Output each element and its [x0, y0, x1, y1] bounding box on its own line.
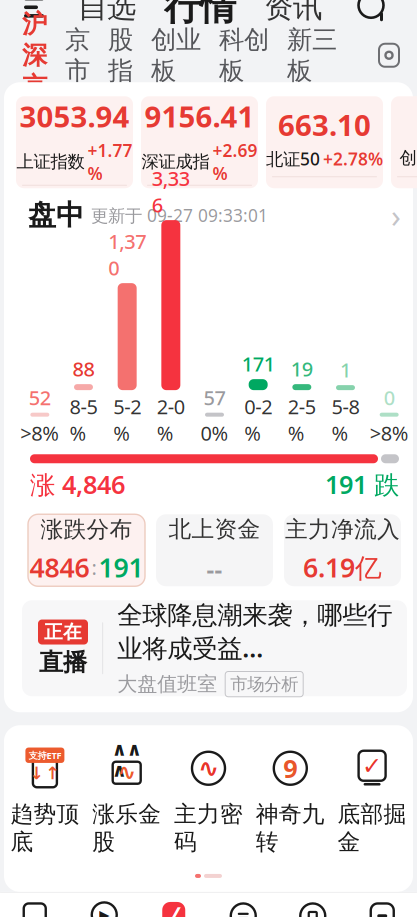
button[interactable]: 主力净流入	[284, 514, 401, 586]
button[interactable]: ▶	[69, 900, 139, 917]
staticText: 上证指数	[16, 151, 84, 172]
staticText: 88	[72, 356, 94, 382]
staticText: 0	[384, 384, 395, 411]
staticText: 191	[98, 549, 143, 585]
button[interactable]: 正在	[22, 600, 407, 696]
button[interactable]: ⁄	[139, 900, 208, 917]
button[interactable]: 首页	[0, 900, 69, 917]
staticText: 52	[29, 384, 51, 411]
staticText: 0-2%	[244, 393, 272, 446]
button[interactable]: ✓	[331, 747, 413, 856]
button[interactable]: 交易	[208, 900, 278, 917]
staticText: +2.78%	[323, 147, 383, 170]
staticText: 资讯	[264, 0, 322, 25]
staticText: +2.69%	[212, 139, 257, 185]
button[interactable]: 沪深京	[13, 35, 56, 75]
staticText: 市场分析	[230, 673, 298, 695]
staticText: 行情	[164, 0, 236, 29]
staticText: 主力密码	[174, 800, 243, 856]
staticText: 京市	[65, 24, 90, 86]
staticText: 股指	[108, 24, 133, 86]
staticText: 深证成指	[141, 151, 209, 172]
staticText: ›	[391, 194, 401, 236]
button[interactable]: 自选	[74, 0, 140, 25]
button[interactable]: ∧∧∧	[86, 747, 168, 856]
button[interactable]: 理财	[278, 900, 347, 917]
staticText: 更新于 09-27 09:33:01	[91, 204, 268, 227]
staticText: 2-0%	[157, 393, 185, 446]
staticText: 神奇九转	[256, 800, 325, 856]
staticText: ∿	[198, 754, 219, 783]
staticText: 科创板	[219, 24, 269, 86]
staticText: 191 跌	[325, 467, 399, 501]
staticText: 9156.41	[144, 97, 254, 136]
staticText: 全球降息潮来袭，哪些行业将成受益...	[117, 600, 392, 664]
button[interactable]: 股指	[99, 35, 142, 75]
staticText: 0%	[200, 420, 228, 446]
button[interactable]: 设置板块	[369, 35, 409, 75]
staticText: +1.77%	[87, 139, 132, 185]
staticText: 9	[283, 751, 297, 785]
staticText: 北证50	[266, 147, 320, 170]
staticText: 1	[340, 357, 351, 383]
staticText: 支持ETF	[28, 749, 61, 761]
button[interactable]: ↓	[4, 747, 86, 856]
staticText: 涨跌分布	[40, 516, 132, 543]
button[interactable]	[391, 96, 417, 188]
button[interactable]: 涨跌分布	[28, 514, 145, 586]
staticText: 涨 4,846	[30, 467, 125, 501]
staticText: 自选	[78, 0, 136, 25]
staticText: ∧∧∧	[112, 739, 142, 781]
staticText: 创	[399, 147, 416, 168]
staticText: --	[206, 553, 222, 585]
staticText: 沪深京	[22, 9, 47, 102]
button[interactable]: 科创板	[210, 35, 278, 75]
button[interactable]: 9156.41	[141, 96, 258, 188]
staticText: 底部掘金	[338, 800, 407, 856]
staticText: 直播	[39, 647, 87, 677]
staticText: ∿	[117, 759, 136, 785]
button[interactable]: 菜单	[12, 0, 56, 29]
button[interactable]: 京市	[56, 35, 99, 75]
button[interactable]: 账户	[347, 900, 417, 917]
staticText: 5-8%	[331, 393, 359, 446]
staticText: 2-5%	[288, 393, 316, 446]
staticText: 57	[203, 384, 225, 411]
button[interactable]: ∿	[168, 747, 249, 856]
button[interactable]: 行情	[160, 0, 240, 29]
button[interactable]: 搜索	[351, 0, 395, 29]
staticText: 北上资金	[168, 515, 260, 543]
staticText: 大盘值班室	[117, 672, 217, 696]
staticText: 4846	[29, 549, 89, 585]
staticText: :	[91, 554, 96, 580]
staticText: 6.19亿	[303, 549, 382, 585]
staticText: 171	[242, 351, 275, 377]
staticText: 5-2%	[113, 393, 141, 446]
staticText: 主力净流入	[285, 516, 400, 543]
staticText: 正在	[44, 621, 82, 643]
button[interactable]: 663.10	[266, 96, 383, 188]
staticText: 663.10	[278, 105, 371, 144]
staticText: ↑	[45, 763, 60, 783]
staticText: 3,336	[152, 165, 190, 218]
staticText: 1,370	[108, 228, 146, 281]
staticText: 盘中	[28, 198, 84, 232]
staticText: ▶	[99, 907, 109, 917]
button[interactable]: 9	[249, 747, 331, 856]
button[interactable]: 新三板	[278, 35, 346, 75]
staticText: ↓	[29, 763, 44, 783]
staticText: ✓	[362, 752, 382, 779]
button[interactable]: 北上资金	[156, 514, 273, 586]
staticText: >8%	[370, 420, 409, 446]
staticText: 19	[291, 356, 313, 382]
staticText: 3053.94	[19, 97, 129, 136]
button[interactable]: 3053.94	[16, 96, 133, 188]
button[interactable]: 盘中	[10, 198, 417, 232]
button[interactable]: 创业板	[142, 35, 210, 75]
staticText: 8-5%	[69, 393, 97, 446]
button[interactable]: 资讯	[260, 0, 326, 25]
staticText: >8%	[20, 420, 59, 446]
staticText: 创业板	[151, 24, 201, 86]
staticText: 新三板	[287, 24, 337, 86]
staticText: ⁄	[172, 898, 175, 917]
